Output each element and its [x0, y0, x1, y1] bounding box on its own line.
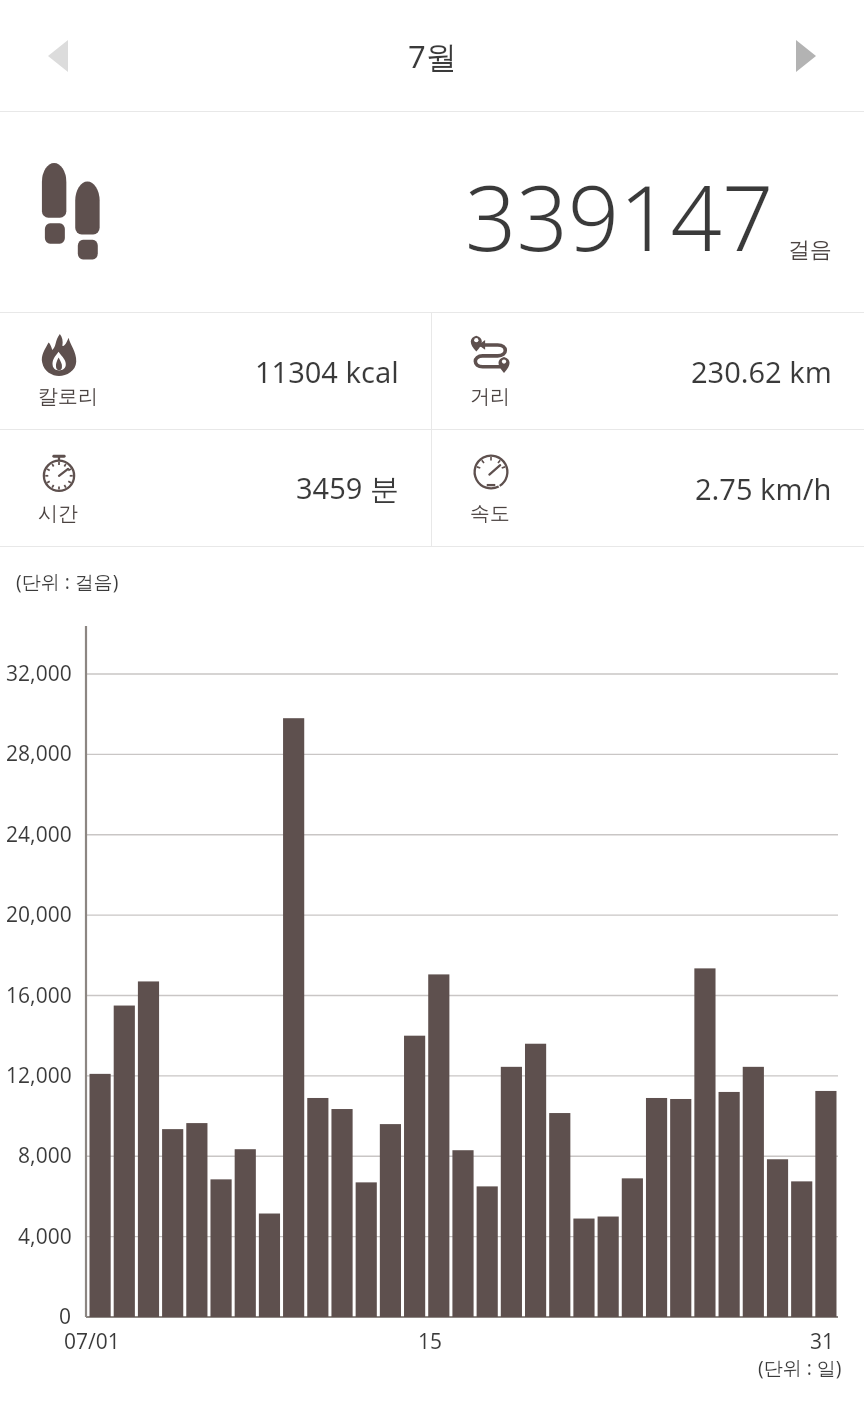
staticText: (단위 : 걸음): [16, 569, 119, 595]
button[interactable]: 칼로리: [0, 313, 431, 429]
staticText: 32,000: [6, 659, 72, 688]
button[interactable]: 속도: [432, 430, 864, 546]
staticText: 20,000: [6, 900, 72, 929]
staticText: 16,000: [6, 981, 72, 1010]
staticText: 0: [59, 1302, 72, 1331]
button[interactable]: 시간: [0, 430, 431, 546]
staticText: 11304 kcal: [255, 352, 399, 391]
button[interactable]: 339147: [0, 112, 864, 313]
staticText: 230.62 km: [691, 352, 832, 391]
staticText: 31: [810, 1327, 835, 1356]
button[interactable]: 거리: [432, 313, 864, 429]
staticText: 7월: [408, 35, 457, 77]
staticText: 12,000: [6, 1061, 72, 1090]
staticText: 07/01: [64, 1327, 120, 1356]
button[interactable]: Next month: [768, 18, 844, 94]
staticText: 속도: [470, 501, 510, 526]
staticText: (단위 : 일): [758, 1355, 842, 1381]
staticText: 28,000: [6, 739, 72, 768]
staticText: 24,000: [6, 820, 72, 849]
staticText: 15: [418, 1327, 443, 1356]
staticText: 거리: [470, 384, 510, 409]
staticText: 칼로리: [38, 384, 98, 409]
staticText: 걸음: [788, 236, 832, 264]
button[interactable]: Previous month: [20, 18, 96, 94]
staticText: 2.75 km/h: [695, 469, 832, 508]
staticText: 시간: [38, 501, 78, 526]
staticText: 3459 분: [296, 468, 399, 508]
staticText: 4,000: [18, 1222, 72, 1251]
staticText: 8,000: [18, 1141, 72, 1170]
staticText: 339147: [465, 155, 774, 278]
